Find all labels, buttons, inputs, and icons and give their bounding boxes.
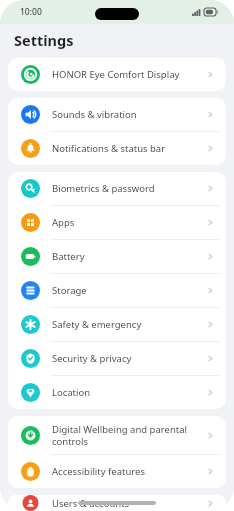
staticText: Digital Wellbeing and parental controls bbox=[52, 423, 200, 448]
button[interactable]: Biometrics & password bbox=[8, 172, 226, 205]
button[interactable]: Safety & emergency bbox=[8, 308, 226, 341]
button[interactable]: Battery bbox=[8, 240, 226, 273]
button[interactable]: Notifications & status bar bbox=[8, 132, 226, 165]
staticText: Battery bbox=[52, 250, 200, 263]
button[interactable]: HONOR Eye Comfort Display bbox=[8, 58, 226, 91]
button[interactable]: Digital Wellbeing and parental controls bbox=[8, 416, 226, 454]
button[interactable]: Accessibility features bbox=[8, 455, 226, 488]
button[interactable]: Sounds & vibration bbox=[8, 98, 226, 131]
staticText: Security & privacy bbox=[52, 352, 200, 365]
staticText: 10:00 bbox=[20, 6, 42, 18]
staticText: Safety & emergency bbox=[52, 318, 200, 331]
staticText: Sounds & vibration bbox=[52, 108, 200, 121]
staticText: HONOR Eye Comfort Display bbox=[52, 68, 200, 81]
staticText: Settings bbox=[14, 30, 74, 50]
staticText: Apps bbox=[52, 216, 200, 229]
staticText: Notifications & status bar bbox=[52, 142, 200, 155]
staticText: Location bbox=[52, 386, 200, 399]
button[interactable]: Storage bbox=[8, 274, 226, 307]
staticText: Biometrics & password bbox=[52, 182, 200, 195]
staticText: Storage bbox=[52, 284, 200, 297]
button[interactable]: Location bbox=[8, 376, 226, 409]
button[interactable]: Security & privacy bbox=[8, 342, 226, 375]
button[interactable]: Apps bbox=[8, 206, 226, 239]
staticText: Accessibility features bbox=[52, 465, 200, 478]
button[interactable]: Users & accounts bbox=[8, 495, 226, 511]
staticText: Users & accounts bbox=[52, 497, 200, 510]
